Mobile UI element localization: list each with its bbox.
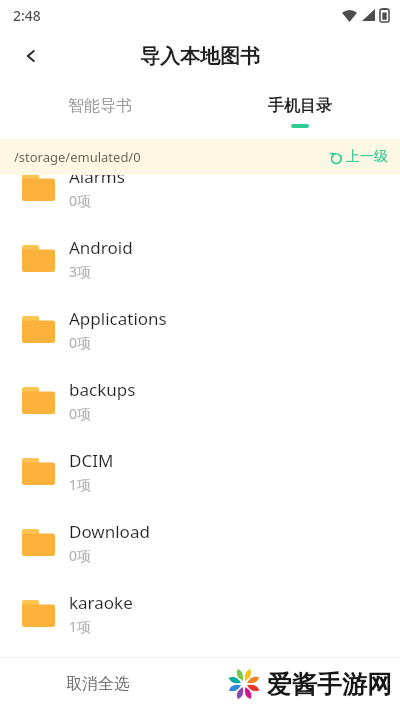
staticText: DCIM xyxy=(69,449,114,472)
button[interactable]: Download xyxy=(0,507,400,578)
staticText: backups xyxy=(69,378,136,401)
button[interactable]: 取消全选 xyxy=(46,664,150,704)
button[interactable]: Back xyxy=(10,35,52,77)
staticText: /storage/emulated/0 xyxy=(14,148,141,166)
staticText: 0项 xyxy=(69,404,92,423)
staticText: 3项 xyxy=(69,262,92,281)
button[interactable]: backups xyxy=(0,365,400,436)
staticText: 0项 xyxy=(69,333,92,352)
staticText: 智能导书 xyxy=(68,96,132,116)
button[interactable]: 上一级 xyxy=(316,143,400,171)
staticText: 上一级 xyxy=(346,148,388,166)
button[interactable]: karaoke xyxy=(0,578,400,649)
staticText: 2:48 xyxy=(13,6,41,25)
staticText: 0项 xyxy=(69,191,92,210)
staticText: 1项 xyxy=(69,475,92,494)
staticText: Applications xyxy=(69,307,167,330)
staticText: 爱酱手游网 xyxy=(267,669,392,700)
staticText: 1项 xyxy=(69,617,92,636)
staticText: 取消全选 xyxy=(66,674,130,694)
button[interactable]: DCIM xyxy=(0,436,400,507)
button[interactable]: 手机目录 xyxy=(200,84,400,139)
staticText: Alarms xyxy=(69,165,125,188)
staticText: Android xyxy=(69,236,133,259)
button[interactable]: Applications xyxy=(0,294,400,365)
staticText: 0项 xyxy=(69,546,92,565)
button[interactable]: Alarms xyxy=(0,152,400,223)
button[interactable]: Android xyxy=(0,223,400,294)
staticText: Download xyxy=(69,520,150,543)
button[interactable]: 智能导书 xyxy=(0,84,200,139)
staticText: karaoke xyxy=(69,591,133,614)
staticText: 手机目录 xyxy=(268,96,332,116)
staticText: 导入本地图书 xyxy=(140,44,260,69)
